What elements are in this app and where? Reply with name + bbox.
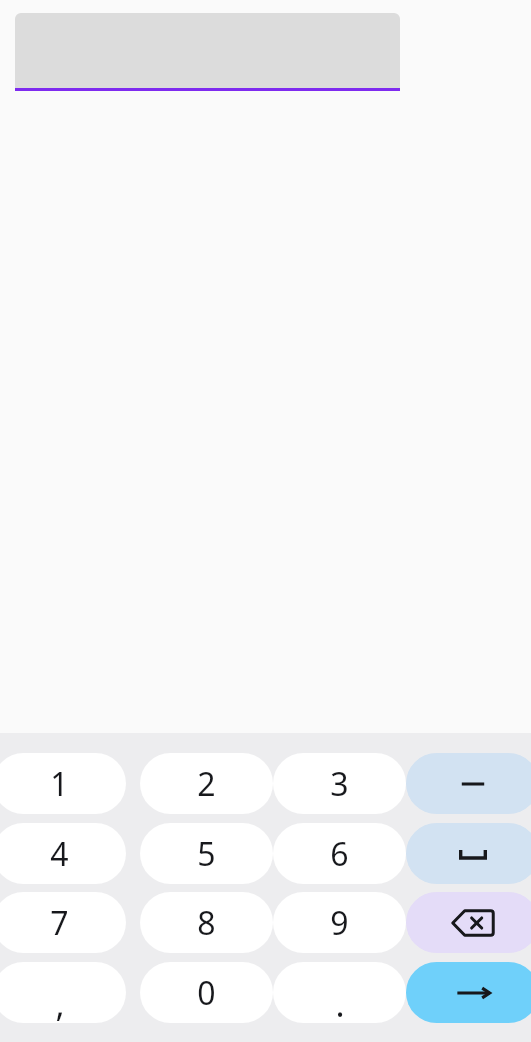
- button[interactable]: [15, 13, 400, 91]
- staticText: .: [335, 981, 345, 1023]
- button[interactable]: 4: [0, 823, 126, 884]
- button[interactable]: 1: [0, 753, 126, 814]
- staticText: 0: [197, 971, 216, 1015]
- staticText: 7: [50, 901, 69, 945]
- staticText: 6: [330, 832, 349, 876]
- staticText: 8: [197, 901, 216, 945]
- button[interactable]: 9: [273, 892, 406, 953]
- button[interactable]: 7: [0, 892, 126, 953]
- staticText: 9: [330, 901, 349, 945]
- button[interactable]: 5: [140, 823, 273, 884]
- staticText: 2: [197, 762, 216, 806]
- staticText: ,: [55, 981, 65, 1023]
- staticText: 4: [50, 832, 69, 876]
- button[interactable]: Enter: [406, 962, 531, 1023]
- staticText: 5: [197, 832, 216, 876]
- staticText: 1: [50, 762, 69, 806]
- button[interactable]: 6: [273, 823, 406, 884]
- button[interactable]: ,: [0, 962, 126, 1023]
- button[interactable]: .: [273, 962, 406, 1023]
- button[interactable]: 8: [140, 892, 273, 953]
- button[interactable]: 3: [273, 753, 406, 814]
- button[interactable]: 2: [140, 753, 273, 814]
- staticText: 3: [330, 762, 349, 806]
- button[interactable]: Minus: [406, 753, 531, 814]
- button[interactable]: Backspace: [406, 892, 531, 953]
- button[interactable]: 0: [140, 962, 273, 1023]
- button[interactable]: Space: [406, 823, 531, 884]
